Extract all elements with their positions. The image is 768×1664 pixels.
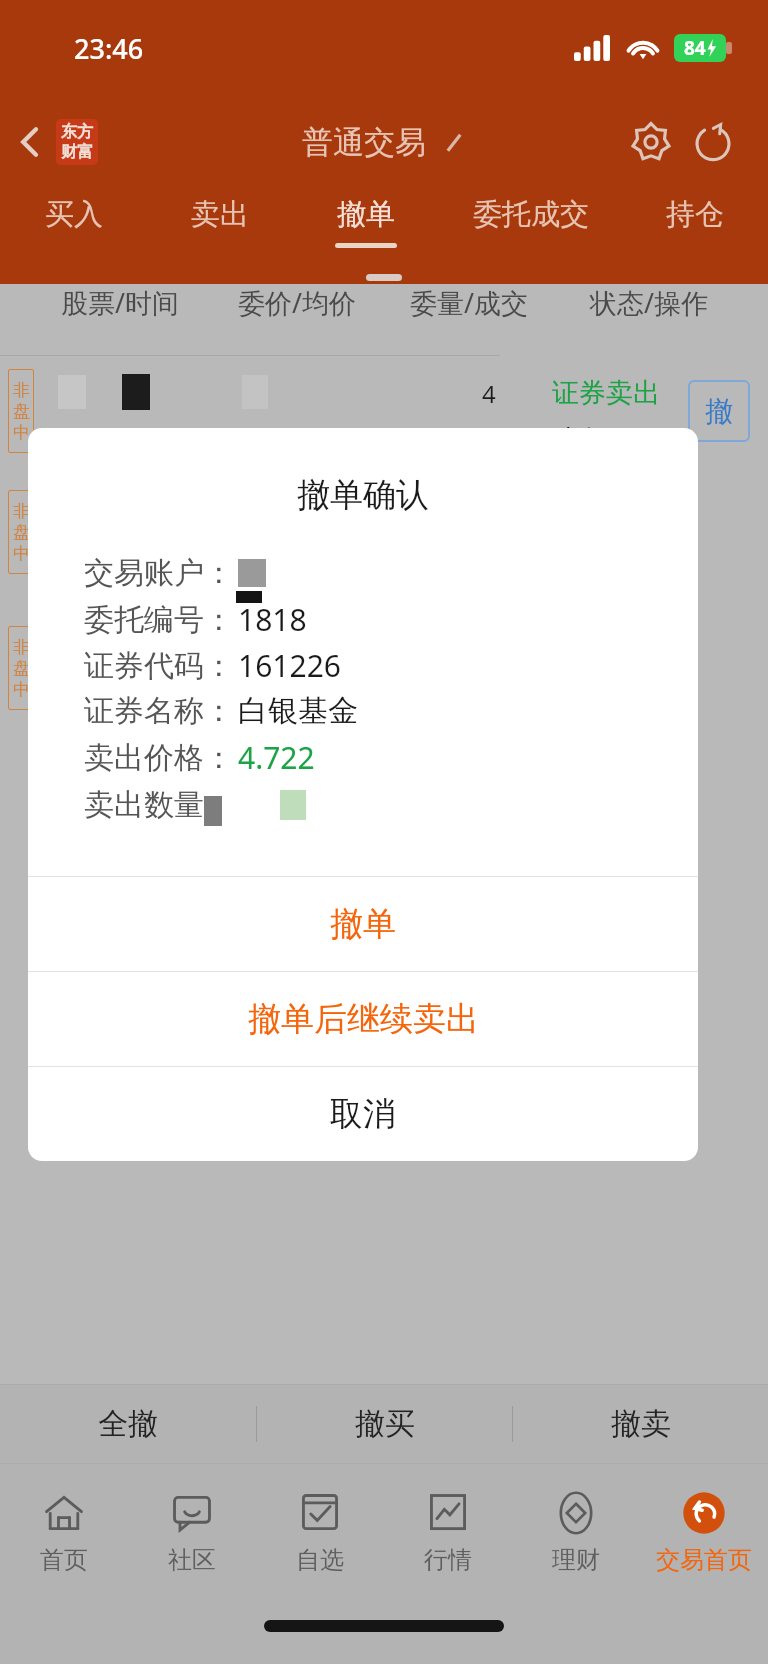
staticText: 交易账户： <box>84 554 234 592</box>
staticText: 持仓 <box>666 196 724 233</box>
staticText: 中 <box>13 679 30 700</box>
button[interactable]: 撤卖 <box>513 1385 768 1463</box>
staticText: 撤单 <box>337 196 395 233</box>
staticText: 买入 <box>45 196 103 233</box>
staticText: 卖出数量 <box>84 786 204 824</box>
staticText: 84 <box>684 35 706 61</box>
button[interactable]: 交易首页 <box>640 1464 768 1600</box>
staticText: 4.722 <box>238 737 315 778</box>
staticText: 撤单确认 <box>28 474 698 516</box>
staticText: 盘 <box>13 522 30 543</box>
button[interactable]: 理财 <box>512 1464 640 1600</box>
staticText: 普通交易 <box>302 123 426 162</box>
staticText: 盘 <box>13 658 30 679</box>
staticText: 东方 <box>61 122 93 142</box>
staticText: 161226 <box>238 645 341 686</box>
button[interactable]: 撤 <box>688 380 750 442</box>
staticText: 证券名称： <box>84 692 234 730</box>
staticText: 委托成交 <box>473 196 589 233</box>
button[interactable]: 社区 <box>128 1464 256 1600</box>
button[interactable]: 卖出 <box>147 188 293 266</box>
staticText: 卖出价格： <box>84 739 234 777</box>
staticText: 全撤 <box>98 1405 158 1443</box>
staticText: 撤卖 <box>611 1405 671 1443</box>
staticText: 行情 <box>424 1545 472 1575</box>
button[interactable]: 买入 <box>0 188 147 266</box>
staticText: 19:50:21 <box>36 422 148 460</box>
button[interactable]: East Money logo <box>56 119 98 165</box>
staticText: 非 <box>13 501 30 522</box>
staticText: 0.000 <box>244 421 319 460</box>
staticText: 撤买 <box>355 1405 415 1443</box>
staticText: 0 <box>441 421 458 460</box>
staticText: 中 <box>13 422 30 443</box>
staticText: 委量/成交 <box>410 284 529 321</box>
button[interactable]: 自选 <box>256 1464 384 1600</box>
staticText: 交易首页 <box>656 1545 752 1575</box>
button[interactable]: 行情 <box>384 1464 512 1600</box>
button[interactable]: 撤单 <box>28 877 698 971</box>
button[interactable]: 撤单后继续卖出 <box>28 972 698 1066</box>
staticText: 白银基金 <box>238 692 358 730</box>
button[interactable]: 持仓 <box>622 188 768 266</box>
staticText: 股票/时间 <box>61 284 180 321</box>
staticText: 卖出 <box>191 196 249 233</box>
staticText: 未报 <box>554 423 612 460</box>
button[interactable]: Settings <box>620 111 682 173</box>
staticText: 取消 <box>330 1093 396 1135</box>
staticText: 4 <box>482 377 496 410</box>
staticText: 状态/操作 <box>590 284 709 321</box>
button[interactable]: 取消 <box>28 1067 698 1161</box>
staticText: 23:46 <box>74 30 144 67</box>
button[interactable]: 委托成交 <box>439 188 622 266</box>
staticText: 证券代码： <box>84 647 234 685</box>
staticText: 财富 <box>61 142 93 162</box>
button[interactable]: 撤买 <box>257 1385 512 1463</box>
staticText: 委价/均价 <box>238 284 357 321</box>
button[interactable]: 全撤 <box>0 1385 256 1463</box>
staticText: 非 <box>13 637 30 658</box>
button[interactable]: 首页 <box>0 1464 128 1600</box>
button[interactable]: Refresh <box>682 111 744 173</box>
staticText: 盘 <box>13 401 30 422</box>
staticText: 撤单后继续卖出 <box>248 998 479 1040</box>
staticText: 证券卖出 <box>552 376 660 410</box>
button[interactable]: Back <box>0 113 58 171</box>
button[interactable]: 普通交易 <box>302 123 466 162</box>
staticText: 撤 <box>705 394 733 429</box>
button[interactable]: 撤单 <box>293 188 439 266</box>
staticText: 撤单 <box>330 903 396 945</box>
staticText: 委托编号： <box>84 601 234 639</box>
staticText: 非 <box>13 380 30 401</box>
staticText: 首页 <box>40 1545 88 1575</box>
staticText: 1818 <box>238 599 307 640</box>
staticText: 中 <box>13 543 30 564</box>
staticText: 理财 <box>552 1545 600 1575</box>
staticText: 社区 <box>168 1545 216 1575</box>
staticText: 自选 <box>296 1545 344 1575</box>
